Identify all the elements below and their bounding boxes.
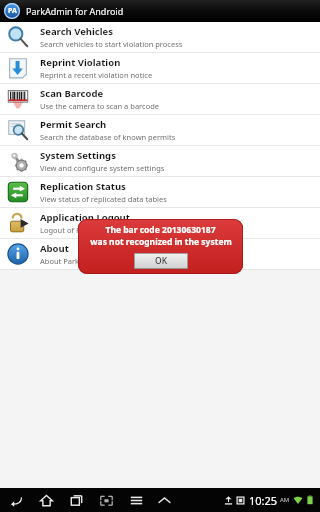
staticText: Application Logout — [40, 211, 130, 224]
staticText: ParkAdmin for Android — [26, 5, 124, 17]
staticText: Reprint Violation — [40, 56, 121, 69]
button[interactable]: About — [0, 239, 320, 269]
staticText: Replication Status — [40, 180, 126, 193]
button[interactable]: Expand — [154, 488, 174, 512]
staticText: 10:25 — [249, 493, 278, 508]
staticText: Use the camera to scan a barcode — [40, 101, 160, 111]
button[interactable]: Back — [6, 488, 26, 512]
staticText: Search vehicles to start violation proce… — [40, 39, 183, 49]
button[interactable]: OK — [134, 253, 188, 269]
button[interactable]: Application Logout — [0, 208, 320, 238]
button[interactable]: Recent apps — [66, 488, 86, 512]
staticText: Scan Barcode — [40, 87, 104, 100]
staticText: View status of replicated data tables — [40, 194, 167, 204]
button[interactable]: System Settings — [0, 146, 320, 176]
button[interactable]: Search Vehicles — [0, 22, 320, 52]
staticText: Permit Search — [40, 118, 107, 131]
button[interactable]: Menu — [126, 488, 146, 512]
staticText: AM — [280, 496, 290, 504]
button[interactable]: Replication Status — [0, 177, 320, 207]
button[interactable]: Reprint Violation — [0, 53, 320, 83]
button[interactable]: Screenshot — [96, 488, 116, 512]
staticText: was not recognized in the system — [90, 236, 232, 248]
staticText: View and configure system settings — [40, 163, 165, 173]
button[interactable]: Scan Barcode — [0, 84, 320, 114]
staticText: Search the database of known permits — [40, 132, 176, 142]
staticText: About — [40, 242, 69, 255]
button[interactable]: Home — [36, 488, 56, 512]
staticText: Reprint a recent violation notice — [40, 70, 153, 80]
staticText: About ParkAdmin for Android — [40, 256, 145, 266]
button[interactable]: Permit Search — [0, 115, 320, 145]
staticText: The bar code 20130630187 — [105, 224, 216, 236]
staticText: System Settings — [40, 149, 116, 162]
staticText: Search Vehicles — [40, 25, 114, 38]
staticText: Logout of ParkAdmin — [40, 225, 115, 235]
staticText: PA — [8, 6, 17, 16]
staticText: OK — [155, 255, 168, 267]
